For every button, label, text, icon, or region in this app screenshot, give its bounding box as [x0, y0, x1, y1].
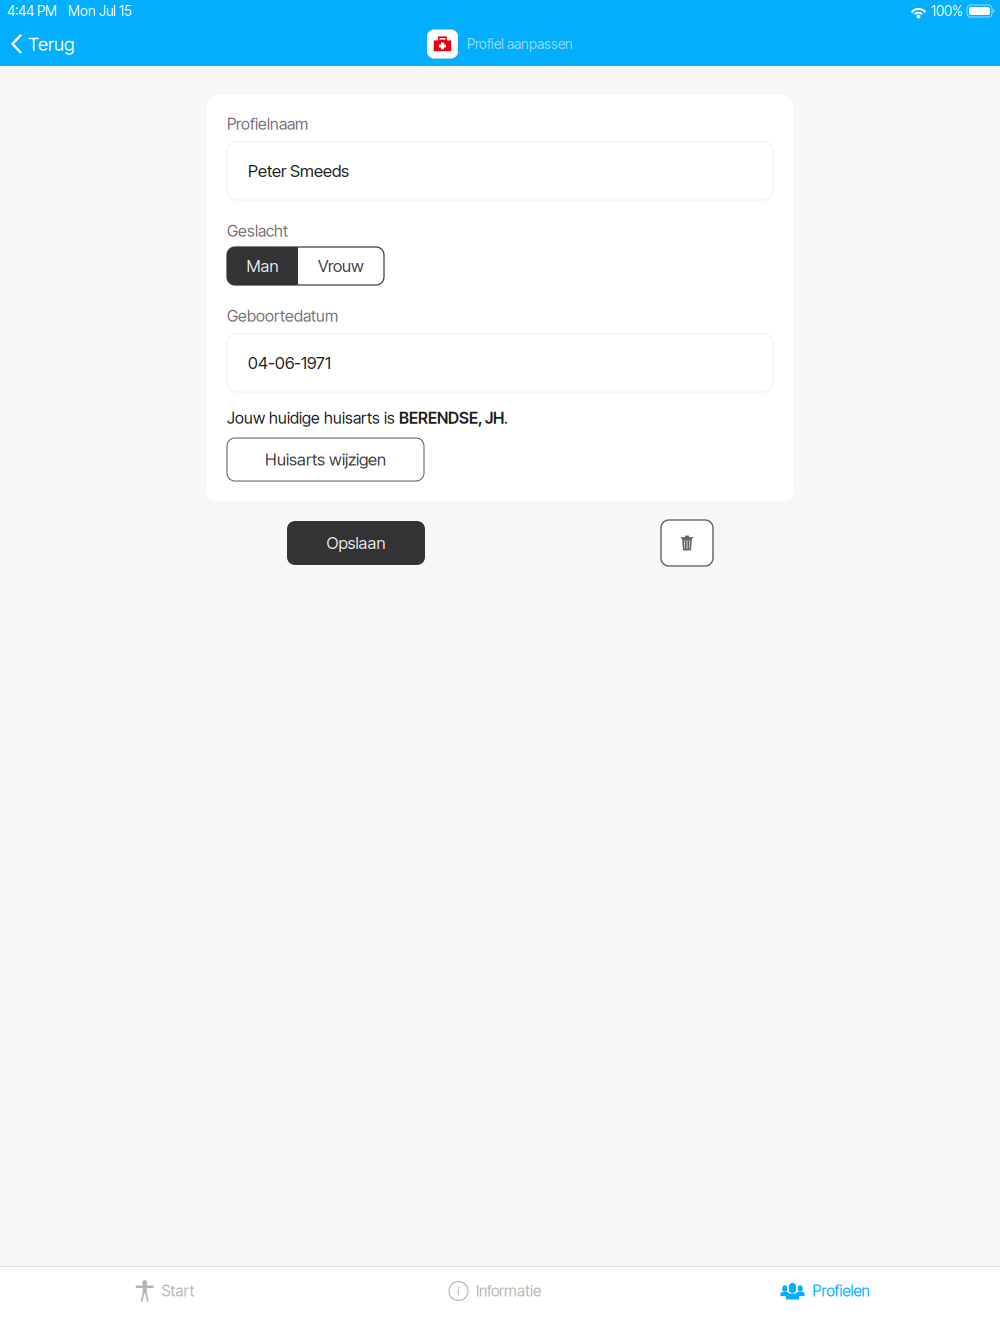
staticText: Peter Smeeds — [248, 161, 349, 181]
staticText: BERENDSE, JH — [399, 408, 504, 428]
button[interactable]: Opslaan — [287, 521, 425, 565]
button[interactable]: Huisarts wijzigen — [227, 438, 424, 481]
button[interactable]: Man — [227, 247, 298, 285]
staticText: 100% — [931, 2, 963, 19]
button[interactable]: Vrouw — [298, 247, 384, 285]
staticText: Opslaan — [326, 533, 385, 553]
staticText: Informatie — [476, 1282, 541, 1300]
staticText: Huisarts wijzigen — [265, 449, 386, 470]
staticText: Profiel aanpassen — [467, 35, 573, 52]
staticText: i — [457, 1283, 460, 1299]
staticText: Terug — [28, 33, 75, 55]
staticText: Man — [246, 256, 278, 276]
staticText: Geboortedatum — [227, 306, 338, 326]
staticText: Mon Jul 15 — [68, 2, 132, 19]
button[interactable]: Terug — [0, 22, 83, 66]
staticText: 04-06-1971 — [248, 353, 331, 373]
staticText: . — [504, 408, 508, 428]
button[interactable]: i — [330, 1266, 660, 1334]
staticText: Geslacht — [227, 221, 288, 241]
staticText: Vrouw — [318, 256, 364, 276]
staticText: Jouw huidige huisarts is — [227, 408, 399, 428]
staticText: Start — [161, 1282, 194, 1300]
button[interactable]: Profielen — [660, 1266, 990, 1334]
button[interactable]: Profiel verwijderen — [661, 520, 713, 566]
staticText: Profielen — [812, 1282, 869, 1300]
staticText: 4:44 PM — [7, 2, 57, 19]
button[interactable]: Start — [0, 1266, 330, 1334]
staticText: Profielnaam — [227, 114, 308, 134]
